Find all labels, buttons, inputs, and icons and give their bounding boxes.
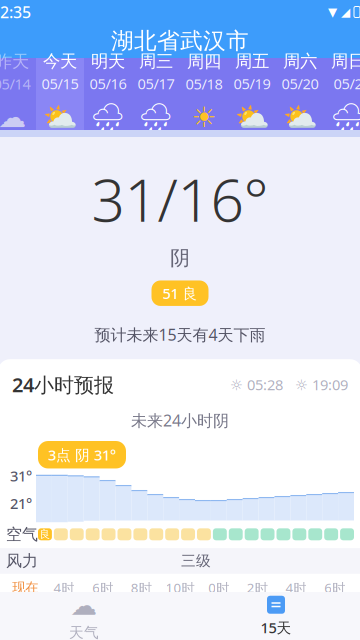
- button[interactable]: ☁: [0, 590, 180, 640]
- staticText: 21°: [10, 493, 32, 513]
- staticText: 05/18: [185, 74, 222, 93]
- staticText: 0时: [208, 579, 229, 596]
- button[interactable]: 周四: [180, 58, 228, 130]
- staticText: 三级: [181, 552, 211, 570]
- button[interactable]: 今天: [36, 58, 84, 130]
- staticText: 周日: [331, 51, 360, 72]
- staticText: 05/15: [41, 74, 78, 93]
- button[interactable]: 周三: [132, 58, 180, 130]
- staticText: 05/20: [281, 74, 318, 93]
- staticText: 8时: [131, 579, 152, 596]
- staticText: 🌧: [138, 101, 174, 133]
- staticText: 风力: [6, 551, 38, 571]
- staticText: 05/19: [233, 74, 270, 93]
- staticText: 6时: [92, 579, 113, 596]
- staticText: ☀: [191, 101, 216, 133]
- staticText: ☁: [70, 590, 97, 621]
- staticText: 31/16°: [91, 160, 268, 238]
- staticText: 周三: [139, 51, 173, 72]
- button[interactable]: 明天: [84, 58, 132, 130]
- staticText: 湖北省武汉市: [111, 27, 249, 55]
- button[interactable]: 15天: [180, 595, 360, 637]
- staticText: 良: [39, 528, 50, 541]
- staticText: 05/2: [333, 74, 360, 93]
- staticText: 4时: [53, 579, 74, 596]
- staticText: 🌧: [330, 101, 360, 133]
- staticText: 24小时预报: [12, 371, 114, 398]
- staticText: ▼: [328, 5, 337, 19]
- staticText: 15天: [260, 618, 291, 637]
- staticText: ☼ 05:28 ☼ 19:09: [230, 375, 348, 394]
- staticText: ◢: [341, 5, 350, 19]
- button[interactable]: 周六: [276, 58, 324, 130]
- staticText: 2:35: [0, 1, 31, 23]
- staticText: 专业数据: [12, 623, 92, 640]
- staticText: 2时: [247, 579, 268, 596]
- button[interactable]: 周五: [228, 58, 276, 130]
- staticText: 未来24小时阴: [131, 410, 229, 431]
- staticText: ☁: [0, 101, 26, 133]
- staticText: 天气: [69, 624, 99, 640]
- button[interactable]: 昨天: [0, 58, 36, 130]
- staticText: 6时: [324, 579, 345, 596]
- button[interactable]: 51 良: [151, 280, 208, 306]
- staticText: 今天: [43, 51, 77, 72]
- staticText: 10时: [165, 579, 194, 596]
- staticText: 周五: [235, 51, 269, 72]
- staticText: 🌧: [90, 101, 126, 133]
- staticText: 51 良: [162, 283, 197, 303]
- button[interactable]: 周日: [324, 58, 360, 130]
- staticText: 阴: [170, 246, 190, 270]
- staticText: 空气: [6, 524, 38, 544]
- staticText: 周四: [187, 51, 221, 72]
- staticText: 4时: [285, 579, 306, 596]
- staticText: 31°: [10, 466, 32, 485]
- staticText: 预计未来15天有4天下雨: [94, 324, 265, 345]
- button[interactable]: 湖北省武汉市: [0, 24, 360, 58]
- button[interactable]: 3点 阴 31°: [38, 441, 126, 468]
- staticText: 05/16: [89, 74, 126, 93]
- staticText: 现在: [12, 579, 38, 596]
- staticText: 明天: [91, 51, 125, 72]
- staticText: 周六: [283, 51, 317, 72]
- staticText: 昨天: [0, 51, 29, 72]
- staticText: 05/17: [137, 74, 174, 93]
- staticText: ⛅: [282, 101, 317, 133]
- staticText: 3点 阴 31°: [48, 445, 116, 464]
- staticText: ⛅: [234, 101, 269, 133]
- staticText: ⛅: [42, 101, 77, 133]
- staticText: 05/14: [0, 74, 30, 93]
